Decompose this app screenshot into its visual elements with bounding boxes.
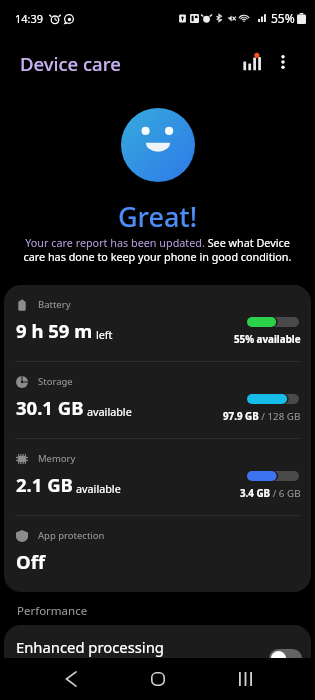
staticText: Battery xyxy=(38,298,71,311)
staticText: Your care report has been updated. See w… xyxy=(18,235,297,264)
button[interactable]: Storage xyxy=(4,362,311,438)
staticText: 9 h 59 m xyxy=(16,318,93,343)
staticText: 55% available xyxy=(234,333,301,346)
staticText: available xyxy=(76,481,121,496)
button[interactable]: Back xyxy=(56,664,86,694)
staticText: 55% xyxy=(271,10,295,26)
staticText: 14:39 xyxy=(15,11,44,26)
button[interactable]: More options xyxy=(270,49,296,75)
button[interactable]: Home xyxy=(143,664,173,694)
staticText: 2.1 GB xyxy=(16,472,73,497)
staticText: available xyxy=(87,404,132,419)
button[interactable]: Memory xyxy=(4,439,311,515)
staticText: Off xyxy=(16,549,45,574)
staticText: Great! xyxy=(0,198,315,235)
staticText: Device care xyxy=(20,51,121,76)
button[interactable]: Battery xyxy=(4,285,311,361)
staticText: Performance xyxy=(17,603,88,619)
staticText: 30.1 GB xyxy=(16,395,84,420)
staticText: 3.4 GB / 6 GB xyxy=(240,487,301,500)
staticText: left xyxy=(96,327,113,342)
staticText: 97.9 GB / 128 GB xyxy=(223,410,301,423)
button[interactable]: Usage statistics xyxy=(240,47,270,77)
staticText: App protection xyxy=(38,529,105,542)
staticText: Enhanced processing xyxy=(16,637,164,657)
staticText: Storage xyxy=(38,375,73,388)
button[interactable]: App protection xyxy=(4,516,311,592)
button[interactable]: Recents xyxy=(231,664,261,694)
button[interactable]: Enhanced processing xyxy=(4,625,311,700)
staticText: Memory xyxy=(38,452,76,465)
